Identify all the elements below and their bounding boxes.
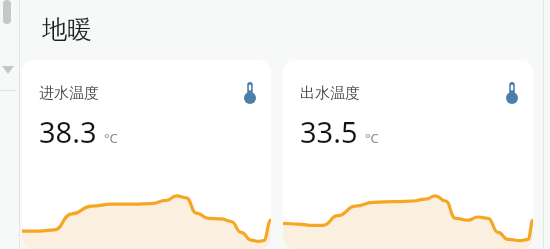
other: Temperature	[244, 82, 256, 104]
staticText: °C	[104, 129, 118, 147]
button[interactable]: 出水温度	[283, 60, 533, 249]
staticText: °C	[365, 129, 379, 147]
staticText: 地暖	[42, 14, 92, 45]
button[interactable]: Collapse	[2, 66, 14, 76]
other: Temperature	[506, 82, 518, 104]
staticText: 38.3	[39, 112, 97, 151]
staticText: 进水温度	[39, 84, 99, 103]
staticText: 出水温度	[300, 84, 360, 103]
staticText: 33.5	[300, 112, 358, 151]
button[interactable]: 进水温度	[22, 60, 271, 249]
